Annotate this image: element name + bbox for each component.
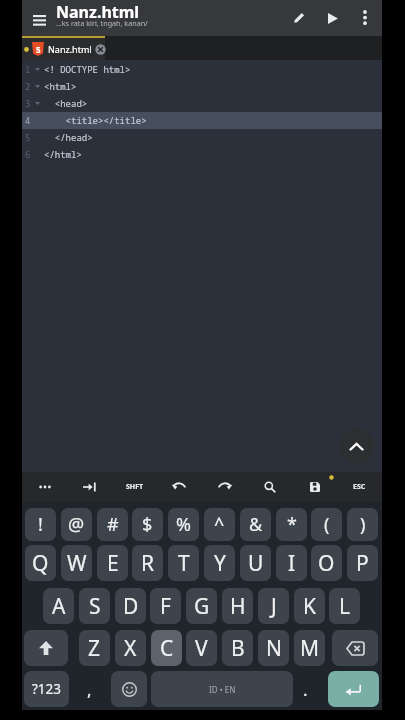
button[interactable]: K	[294, 588, 325, 624]
staticText: R	[141, 549, 155, 578]
button[interactable]: Z	[79, 630, 110, 666]
staticText: !	[38, 512, 43, 537]
button[interactable]: ESC	[337, 472, 382, 502]
staticText: H	[230, 592, 246, 621]
button[interactable]: (	[311, 508, 342, 541]
staticText: ...ks rata kiri, tngah, kanan/	[56, 18, 148, 28]
button[interactable]: H	[222, 588, 253, 624]
staticText: V	[195, 634, 208, 663]
button[interactable]: #	[97, 508, 128, 541]
staticText: 5	[36, 44, 41, 55]
button[interactable]: ,	[75, 671, 103, 707]
button[interactable]: Q	[25, 545, 56, 581]
staticText: ,	[87, 678, 92, 701]
button[interactable]: SHFT	[112, 472, 157, 502]
button[interactable]: %	[168, 508, 199, 541]
button[interactable]: R	[132, 545, 163, 581]
button[interactable]: U	[240, 545, 271, 581]
staticText: 5	[25, 131, 31, 143]
button[interactable]	[332, 630, 378, 666]
staticText: 6	[25, 148, 31, 160]
staticText: <! DOCTYPE html>	[44, 63, 131, 75]
button[interactable]	[22, 0, 54, 36]
staticText: ^	[214, 512, 225, 537]
button[interactable]	[328, 671, 379, 707]
button[interactable]: A	[43, 588, 74, 624]
staticText: $	[142, 512, 153, 537]
staticText: 3	[25, 97, 31, 109]
button[interactable]: $	[132, 508, 163, 541]
button[interactable]: V	[186, 630, 217, 666]
staticText: ESC	[353, 482, 366, 492]
button[interactable]: L	[329, 588, 360, 624]
button[interactable]	[24, 630, 68, 666]
staticText: P	[356, 549, 369, 578]
button[interactable]	[247, 472, 292, 502]
button[interactable]: E	[97, 545, 128, 581]
button[interactable]: *	[276, 508, 307, 541]
button[interactable]	[157, 472, 202, 502]
button[interactable]: G	[186, 588, 217, 624]
button[interactable]: T	[168, 545, 199, 581]
staticText: S	[89, 592, 101, 621]
button[interactable]: O	[311, 545, 342, 581]
button[interactable]: P	[347, 545, 378, 581]
button[interactable]	[111, 671, 147, 707]
staticText: Y	[214, 549, 226, 578]
staticText: M	[300, 634, 320, 663]
button[interactable]: )	[347, 508, 378, 541]
button[interactable]: I	[276, 545, 307, 581]
staticText: </html>	[44, 148, 82, 160]
staticText: (	[324, 512, 330, 537]
staticText: SHFT	[126, 482, 144, 492]
button[interactable]	[316, 2, 348, 34]
button[interactable]: !	[25, 508, 56, 541]
button[interactable]: F	[150, 588, 181, 624]
button[interactable]	[292, 472, 337, 502]
staticText: W	[67, 549, 87, 578]
button[interactable]: ID • EN	[151, 671, 293, 707]
button[interactable]: X	[115, 630, 146, 666]
button[interactable]: @	[61, 508, 92, 541]
button[interactable]	[67, 472, 112, 502]
staticText: 4	[25, 114, 31, 126]
button[interactable]: C	[151, 630, 182, 666]
button[interactable]: S	[79, 588, 110, 624]
staticText: </head>	[44, 131, 93, 143]
button[interactable]: J	[258, 588, 289, 624]
staticText: &	[249, 512, 263, 537]
staticText: <head>	[44, 97, 88, 109]
staticText: Q	[32, 549, 49, 578]
staticText: Nanz.html	[48, 43, 92, 55]
button[interactable]: D	[115, 588, 146, 624]
button[interactable]: Y	[204, 545, 235, 581]
staticText: K	[303, 592, 316, 621]
button[interactable]: ?123	[24, 671, 69, 707]
button[interactable]: .	[291, 671, 319, 707]
button[interactable]	[282, 1, 316, 35]
staticText: D	[123, 592, 139, 621]
staticText: T	[178, 549, 190, 578]
button[interactable]: W	[61, 545, 92, 581]
staticText: #	[107, 512, 119, 537]
button[interactable]	[22, 472, 67, 502]
button[interactable]: &	[240, 508, 271, 541]
button[interactable]: B	[222, 630, 253, 666]
staticText: ID • EN	[209, 684, 236, 695]
button[interactable]: 5	[22, 36, 105, 60]
staticText: I	[288, 549, 296, 578]
button[interactable]	[202, 472, 247, 502]
button[interactable]: ^	[204, 508, 235, 541]
staticText: <html>	[44, 80, 77, 92]
staticText: B	[231, 634, 245, 663]
button[interactable]: M	[294, 630, 325, 666]
staticText: E	[107, 549, 119, 578]
staticText: F	[160, 592, 171, 621]
button[interactable]: N	[258, 630, 289, 666]
staticText: N	[266, 634, 282, 663]
staticText: *	[287, 512, 297, 537]
button[interactable]	[348, 1, 382, 35]
staticText: L	[339, 592, 351, 621]
staticText: )	[360, 512, 366, 537]
button[interactable]	[339, 429, 374, 464]
